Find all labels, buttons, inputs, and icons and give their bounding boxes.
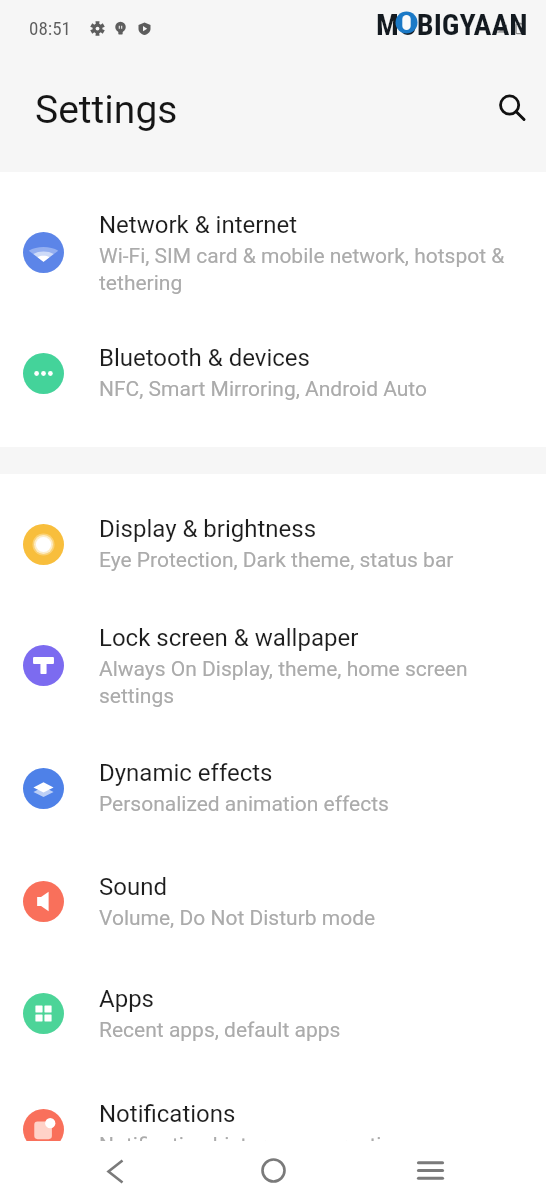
staticText: Apps	[99, 985, 154, 1013]
staticText: MOBIGYAAN	[376, 7, 528, 42]
button[interactable]: Notifications	[0, 1069, 546, 1189]
staticText: Network & internet	[99, 211, 298, 239]
button[interactable]: Back	[88, 1144, 142, 1198]
button[interactable]: Network & internet	[0, 188, 546, 317]
staticText: Recent apps, default apps	[99, 1018, 341, 1043]
staticText: NFC, Smart Mirroring, Android Auto	[99, 377, 428, 402]
staticText: Personalized animation effects	[99, 792, 389, 817]
button[interactable]: Search	[488, 84, 536, 132]
button[interactable]: Apps	[0, 958, 546, 1069]
staticText: Display & brightness	[99, 515, 317, 543]
staticText: Notifications	[99, 1100, 236, 1128]
staticText: 08:51	[29, 17, 71, 39]
button[interactable]: Display & brightness	[0, 488, 546, 600]
button[interactable]: Sound	[0, 845, 546, 958]
staticText: Always On Display, theme, home screen se…	[99, 657, 509, 708]
button[interactable]: Bluetooth & devices	[0, 317, 546, 429]
button[interactable]: Recent apps	[403, 1143, 457, 1197]
button[interactable]: Lock screen & wallpaper	[0, 600, 546, 731]
staticText: Lock screen & wallpaper	[99, 624, 359, 652]
staticText: Notification history, conversations	[99, 1133, 416, 1158]
staticText: Bluetooth & devices	[99, 344, 310, 372]
staticText: Dynamic effects	[99, 759, 273, 787]
staticText: Volume, Do Not Disturb mode	[99, 906, 376, 931]
staticText: Settings	[35, 87, 178, 133]
button[interactable]: Home	[246, 1143, 300, 1197]
staticText: Wi-Fi, SIM card & mobile network, hotspo…	[99, 244, 509, 295]
staticText: Sound	[99, 873, 167, 901]
button[interactable]: Dynamic effects	[0, 731, 546, 845]
staticText: Eye Protection, Dark theme, status bar	[99, 548, 454, 573]
